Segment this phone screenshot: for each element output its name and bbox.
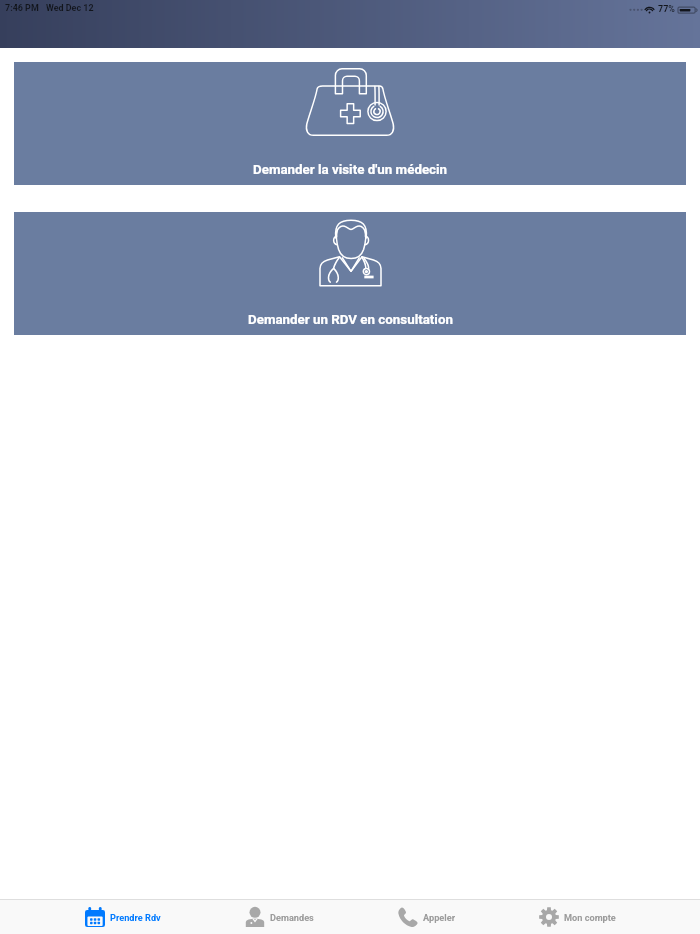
staticText: 7:46 PM [5,3,39,13]
button[interactable]: Demandes [198,900,349,934]
staticText: Appeler [423,912,456,923]
staticText: Wed Dec 12 [46,3,94,13]
staticText: Demander la visite d'un médecin [253,162,448,178]
staticText: 77% [658,4,675,14]
button[interactable]: Demander un RDV en consultation [14,212,686,335]
button[interactable]: Appeler [349,900,501,934]
staticText: Demander un RDV en consultation [248,312,453,328]
staticText: Mon compte [564,912,616,923]
button[interactable]: Demander la visite d'un médecin [14,62,686,185]
button[interactable]: Prendre Rdv [47,900,198,934]
staticText: Prendre Rdv [110,912,161,923]
button[interactable]: Mon compte [501,900,653,934]
staticText: Demandes [270,912,314,923]
